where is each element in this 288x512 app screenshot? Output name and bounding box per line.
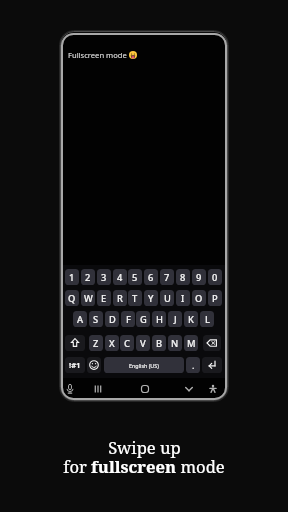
button[interactable]: D	[105, 311, 119, 327]
button[interactable]: 5	[128, 269, 142, 285]
staticText: T	[132, 292, 138, 305]
button[interactable]: 2	[81, 269, 95, 285]
button[interactable]: R	[113, 290, 127, 306]
staticText: X	[109, 337, 115, 350]
button[interactable]: V	[136, 335, 150, 351]
button[interactable]: L	[200, 311, 214, 327]
button[interactable]: J	[168, 311, 182, 327]
staticText: Fullscreen mode	[68, 50, 129, 60]
button[interactable]: C	[120, 335, 134, 351]
staticText: M	[187, 337, 196, 350]
staticText: 2	[85, 271, 91, 284]
button[interactable]: 6	[144, 269, 158, 285]
staticText: Z	[93, 337, 99, 350]
staticText: F	[126, 313, 131, 326]
staticText: 8	[180, 271, 186, 284]
staticText: 5	[132, 271, 138, 284]
staticText: V	[140, 337, 146, 350]
staticText: D	[109, 313, 116, 326]
button[interactable]: Home	[136, 380, 154, 398]
button[interactable]: T	[128, 290, 142, 306]
button[interactable]: N	[168, 335, 182, 351]
button[interactable]: H	[152, 311, 166, 327]
button[interactable]: S	[89, 311, 103, 327]
button[interactable]: Z	[89, 335, 103, 351]
staticText: B	[156, 337, 163, 350]
button[interactable]: A	[73, 311, 87, 327]
staticText: N	[171, 337, 179, 350]
staticText: S	[93, 313, 99, 326]
button[interactable]: I	[176, 290, 190, 306]
staticText: J	[174, 313, 177, 326]
staticText: Q	[68, 292, 76, 305]
staticText: 9	[196, 271, 202, 284]
button[interactable]: X	[105, 335, 119, 351]
staticText: U	[164, 292, 171, 305]
button[interactable]: F	[121, 311, 135, 327]
staticText: .	[192, 359, 195, 371]
staticText: A	[77, 313, 84, 326]
staticText: I	[181, 292, 185, 305]
staticText: 0	[212, 271, 218, 284]
button[interactable]: B	[152, 335, 166, 351]
staticText: English (US)	[129, 362, 159, 369]
button[interactable]: O	[192, 290, 206, 306]
staticText: R	[117, 292, 123, 305]
button[interactable]: Backspace	[203, 335, 221, 351]
button[interactable]: K	[184, 311, 198, 327]
staticText: 3	[101, 271, 107, 284]
button[interactable]: M	[184, 335, 198, 351]
button[interactable]: G	[136, 311, 150, 327]
button[interactable]: Hide keyboard	[180, 380, 198, 398]
staticText: !#1	[69, 360, 81, 370]
staticText: 4	[117, 271, 123, 284]
button[interactable]: 0	[208, 269, 222, 285]
staticText: P	[212, 292, 218, 305]
button[interactable]: Voice input	[61, 380, 79, 398]
button[interactable]: U	[160, 290, 174, 306]
button[interactable]: 4	[113, 269, 127, 285]
staticText: 7	[164, 271, 170, 284]
button[interactable]: 8	[176, 269, 190, 285]
button[interactable]: Accessibility	[204, 380, 222, 398]
staticText: H	[156, 313, 163, 326]
button[interactable]: .	[186, 357, 200, 373]
staticText: L	[205, 313, 210, 326]
staticText: C	[124, 337, 130, 350]
button[interactable]: 1	[65, 269, 79, 285]
button[interactable]: 7	[160, 269, 174, 285]
button[interactable]: P	[208, 290, 222, 306]
staticText: 1	[69, 271, 75, 284]
staticText: E	[101, 292, 107, 305]
button[interactable]: Q	[65, 290, 79, 306]
staticText: 6	[148, 271, 154, 284]
staticText: Y	[148, 292, 154, 305]
staticText: W	[84, 292, 93, 305]
button[interactable]: Enter	[202, 357, 222, 373]
button[interactable]: Y	[144, 290, 158, 306]
button[interactable]: 3	[97, 269, 111, 285]
staticText: K	[188, 313, 194, 326]
button[interactable]: 9	[192, 269, 206, 285]
staticText: for fullscreen mode	[63, 455, 225, 478]
staticText: Swipe up	[108, 436, 181, 459]
button[interactable]: !#1	[65, 357, 85, 373]
button[interactable]: Recents	[89, 380, 107, 398]
button[interactable]: W	[81, 290, 95, 306]
button[interactable]: Emoji keyboard	[87, 357, 101, 373]
staticText: G	[140, 313, 147, 326]
staticText: O	[195, 292, 203, 305]
button[interactable]: Shift	[65, 335, 85, 351]
button[interactable]: E	[97, 290, 111, 306]
button[interactable]: English (US)	[104, 357, 184, 373]
